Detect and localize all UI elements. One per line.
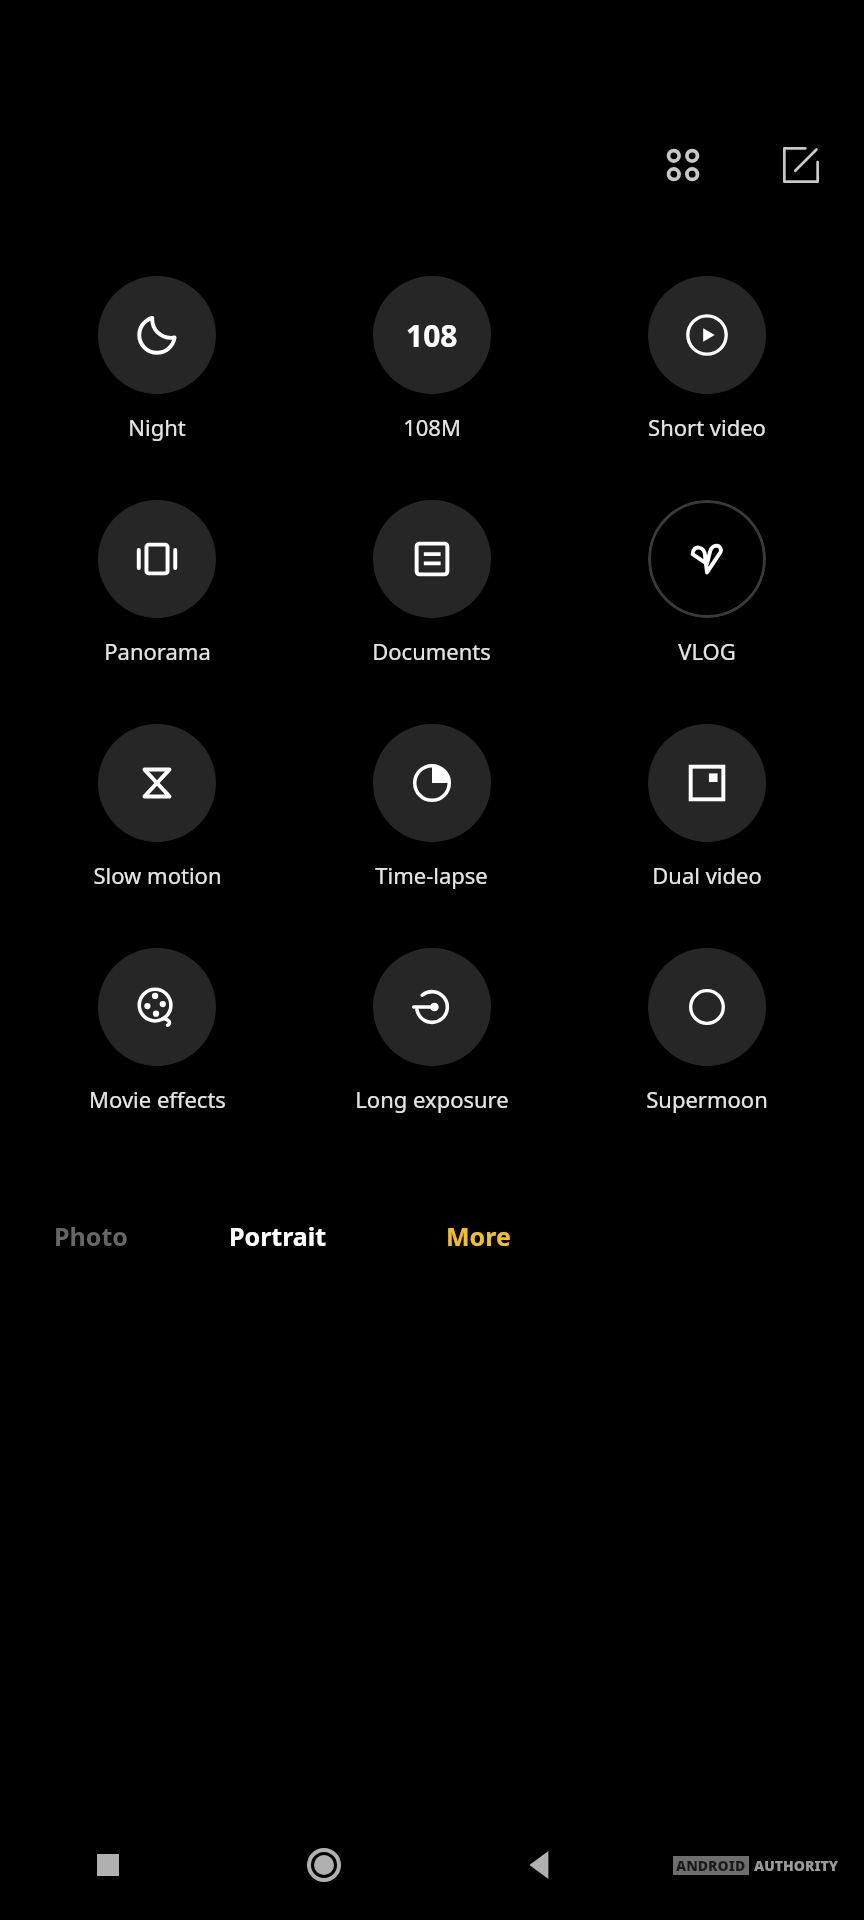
button[interactable]: Long exposure: [294, 944, 569, 1118]
button[interactable]: Photo: [0, 1198, 128, 1274]
button[interactable]: Panorama: [20, 496, 294, 670]
button[interactable]: Slow motion: [20, 720, 294, 894]
button[interactable]: Time-lapse: [294, 720, 569, 894]
staticText: Dual video: [652, 860, 762, 890]
button[interactable]: VLOG: [569, 496, 844, 670]
staticText: Short video: [648, 412, 766, 442]
staticText: 108M: [403, 412, 461, 442]
staticText: Night: [128, 412, 186, 442]
button[interactable]: Home: [216, 1810, 432, 1920]
staticText: VLOG: [678, 636, 736, 666]
staticText: Documents: [372, 636, 491, 666]
button[interactable]: Portrait: [178, 1198, 378, 1274]
button[interactable]: Dual video: [569, 720, 844, 894]
button[interactable]: Night: [20, 272, 294, 446]
button[interactable]: Recents: [0, 1810, 216, 1920]
button[interactable]: More: [378, 1198, 578, 1274]
staticText: ANDROID: [676, 1856, 746, 1875]
button[interactable]: Grid view: [648, 130, 718, 200]
staticText: Movie effects: [89, 1084, 226, 1114]
button[interactable]: Supermoon: [569, 944, 844, 1118]
button[interactable]: Movie effects: [20, 944, 294, 1118]
staticText: 108: [406, 315, 458, 356]
staticText: Panorama: [104, 636, 211, 666]
button[interactable]: Edit modes: [766, 130, 836, 200]
staticText: Long exposure: [355, 1084, 509, 1114]
staticText: Time-lapse: [375, 860, 488, 890]
button[interactable]: Documents: [294, 496, 569, 670]
staticText: Photo: [54, 1219, 128, 1253]
staticText: More: [446, 1219, 511, 1253]
button[interactable]: Short video: [569, 272, 844, 446]
staticText: Slow motion: [93, 860, 222, 890]
button[interactable]: 108: [294, 272, 569, 446]
staticText: AUTHORITY: [754, 1856, 839, 1875]
button[interactable]: Back: [432, 1810, 648, 1920]
staticText: Supermoon: [646, 1084, 768, 1114]
staticText: Portrait: [229, 1219, 327, 1253]
